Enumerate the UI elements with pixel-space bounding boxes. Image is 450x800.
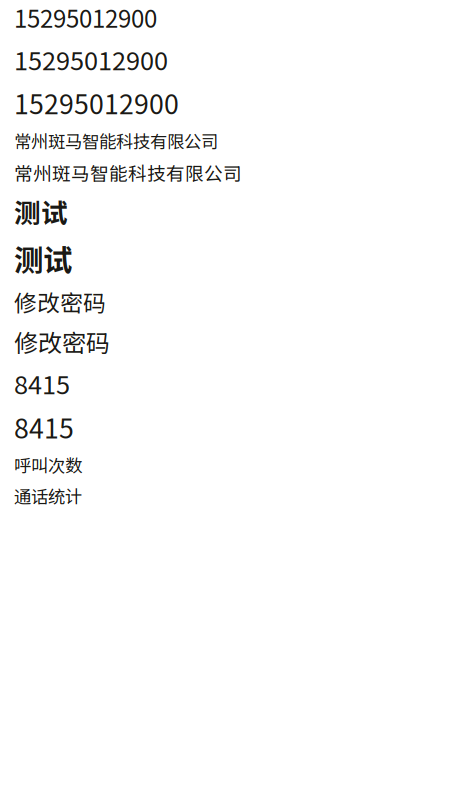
staticText: 通话统计	[14, 483, 82, 508]
staticText: 测试	[14, 237, 72, 279]
staticText: 测试	[14, 192, 68, 231]
staticText: 8415	[14, 365, 70, 401]
staticText: 修改密码	[14, 285, 106, 318]
staticText: 呼叫次数	[14, 452, 82, 477]
staticText: 常州斑马智能科技有限公司	[14, 128, 218, 153]
staticText: 15295012900	[14, 0, 157, 35]
staticText: 常州斑马智能科技有限公司	[14, 159, 242, 186]
staticText: 15295012900	[14, 83, 179, 122]
staticText: 8415	[14, 407, 74, 446]
staticText: 15295012900	[14, 41, 168, 77]
staticText: 修改密码	[14, 324, 110, 359]
